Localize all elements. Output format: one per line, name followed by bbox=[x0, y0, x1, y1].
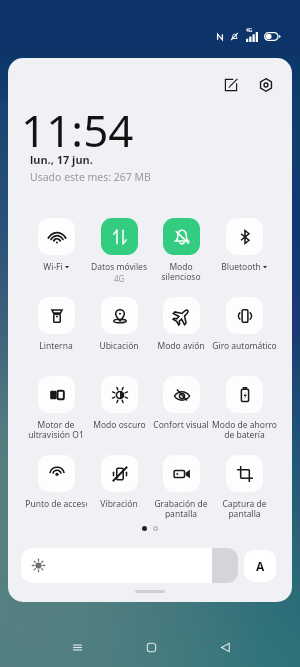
button[interactable]: Modo avión bbox=[150, 292, 212, 352]
staticText: Vibración bbox=[100, 498, 138, 510]
button[interactable]: Modo oscuro bbox=[88, 371, 150, 431]
staticText: Motor de ultravisión O1 bbox=[28, 419, 84, 441]
staticText: lun., 17 jun. bbox=[30, 152, 93, 167]
button[interactable]: Grabación de pantalla bbox=[150, 450, 212, 520]
staticText: Modo silencioso bbox=[161, 261, 201, 283]
staticText: Ubicación bbox=[99, 340, 139, 352]
staticText: 4G bbox=[114, 273, 125, 284]
staticText: 4G bbox=[246, 27, 253, 34]
staticText: 11:54 bbox=[21, 100, 134, 160]
staticText: Linterna bbox=[39, 340, 73, 352]
button[interactable]: Bluetooth bbox=[213, 213, 275, 273]
button[interactable]: Vibración bbox=[88, 450, 150, 510]
staticText: Modo avión bbox=[157, 340, 205, 352]
staticText: Wi-Fi bbox=[43, 261, 63, 273]
button[interactable]: Confort visual bbox=[150, 371, 212, 431]
button[interactable]: Wi-Fi bbox=[25, 213, 87, 273]
staticText: Datos móviles bbox=[91, 261, 147, 273]
button[interactable]: Home bbox=[136, 632, 166, 662]
staticText: Usado este mes: 267 MB bbox=[30, 170, 151, 184]
button[interactable]: Modo silencioso bbox=[150, 213, 212, 283]
staticText: Grabación de pantalla bbox=[154, 498, 208, 520]
staticText: Modo de ahorro de batería bbox=[212, 419, 277, 441]
staticText: Confort visual bbox=[153, 419, 209, 431]
staticText: A bbox=[256, 558, 265, 574]
staticText: Bluetooth bbox=[221, 261, 261, 273]
staticText: Modo oscuro bbox=[93, 419, 146, 431]
button[interactable]: Datos móviles bbox=[88, 213, 150, 284]
button[interactable]: A bbox=[244, 550, 276, 582]
button[interactable]: Recent apps bbox=[62, 632, 92, 662]
staticText: Captura de pantalla bbox=[222, 498, 267, 520]
staticText: Giro automático bbox=[212, 340, 277, 352]
button[interactable]: Ubicación bbox=[88, 292, 150, 352]
button[interactable]: Punto de acceso personal bbox=[25, 450, 87, 510]
button[interactable]: Modo de ahorro de batería bbox=[213, 371, 275, 441]
button[interactable]: Giro automático bbox=[213, 292, 275, 352]
button[interactable]: Back bbox=[210, 632, 240, 662]
staticText: Punto de acceso personal bbox=[25, 498, 87, 510]
button[interactable]: Motor de ultravisión O1 bbox=[25, 371, 87, 441]
button[interactable]: Captura de pantalla bbox=[213, 450, 275, 520]
button[interactable]: Linterna bbox=[25, 292, 87, 352]
button[interactable]: Brightness bbox=[21, 548, 238, 583]
button[interactable]: Settings bbox=[253, 72, 279, 98]
button[interactable]: Edit quick settings bbox=[218, 72, 244, 98]
